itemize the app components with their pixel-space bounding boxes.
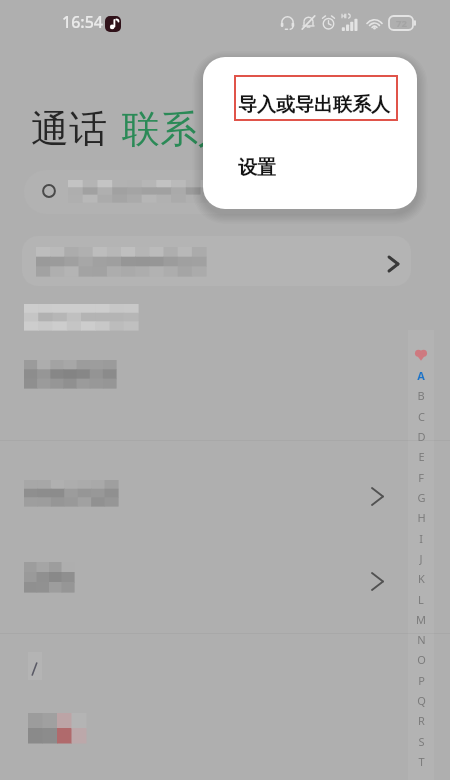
- staticText: S: [418, 734, 425, 748]
- button[interactable]: [22, 236, 411, 286]
- staticText: B: [417, 388, 425, 402]
- button[interactable]: [0, 545, 450, 609]
- staticText: Q: [417, 693, 426, 707]
- staticText: P: [418, 673, 425, 687]
- staticText: M: [416, 612, 426, 626]
- staticText: 16:54: [62, 11, 103, 33]
- staticText: I: [419, 531, 423, 545]
- button[interactable]: Search: [24, 170, 409, 214]
- staticText: C: [418, 409, 425, 423]
- staticText: 72: [396, 17, 407, 30]
- staticText: H: [417, 510, 426, 524]
- staticText: A: [417, 368, 425, 382]
- staticText: E: [418, 449, 425, 463]
- button[interactable]: 设置: [234, 146, 398, 190]
- staticText: D: [417, 429, 426, 443]
- staticText: L: [418, 592, 424, 606]
- staticText: G: [417, 490, 426, 504]
- staticText: K: [418, 571, 425, 585]
- staticText: 设置: [238, 156, 276, 180]
- staticText: J: [419, 551, 423, 565]
- button[interactable]: 导入或导出联系人: [234, 75, 398, 121]
- button[interactable]: [0, 460, 450, 524]
- button[interactable]: 通话: [31, 105, 107, 153]
- staticText: F: [418, 470, 424, 484]
- staticText: O: [417, 652, 426, 666]
- staticText: T: [418, 754, 425, 768]
- staticText: N: [417, 632, 426, 646]
- staticText: R: [418, 713, 425, 727]
- staticText: 导入或导出联系人: [238, 93, 390, 117]
- button[interactable]: Alphabet index: [408, 330, 434, 780]
- button[interactable]: 联系人: [122, 105, 236, 153]
